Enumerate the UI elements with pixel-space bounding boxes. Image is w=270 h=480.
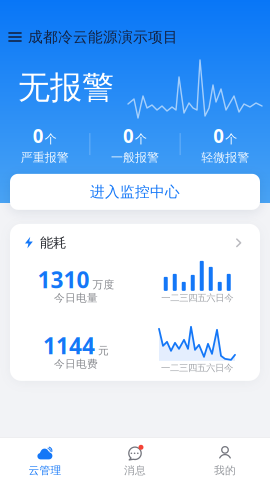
staticText: 轻微报警 <box>201 150 249 165</box>
staticText: 严重报警 <box>21 150 69 165</box>
staticText: 我的 <box>214 464 236 477</box>
staticText: 日 <box>215 292 224 304</box>
button[interactable]: 云管理 <box>0 438 90 480</box>
button[interactable]: 菜单 <box>9 32 21 42</box>
staticText: 今日电量 <box>54 291 98 304</box>
staticText: 1310 <box>37 264 89 294</box>
staticText: 日 <box>215 362 224 374</box>
staticText: 四 <box>188 292 197 304</box>
staticText: 0 <box>33 123 44 148</box>
staticText: 成都冷云能源演示项目 <box>28 28 178 46</box>
staticText: 四 <box>188 362 197 374</box>
staticText: 0 <box>213 123 224 148</box>
staticText: 1144 <box>43 330 95 360</box>
staticText: 0 <box>123 123 134 148</box>
staticText: 元 <box>98 344 109 357</box>
staticText: 五 <box>197 292 206 304</box>
staticText: 万度 <box>92 278 114 291</box>
staticText: 六 <box>206 292 215 304</box>
staticText: 今 <box>224 292 233 304</box>
staticText: 六 <box>206 362 215 374</box>
staticText: 三 <box>179 362 188 374</box>
staticText: 个 <box>45 132 57 146</box>
button[interactable]: 消息 <box>90 438 180 480</box>
staticText: 一般报警 <box>111 150 159 165</box>
staticText: 个 <box>135 132 147 146</box>
staticText: 五 <box>197 362 206 374</box>
button[interactable]: 我的 <box>180 438 270 480</box>
button[interactable]: 进入监控中心 <box>10 174 260 210</box>
staticText: 个 <box>225 132 237 146</box>
staticText: 二 <box>170 292 179 304</box>
staticText: 消息 <box>124 464 146 477</box>
staticText: 云管理 <box>28 464 61 477</box>
button[interactable]: 能耗 <box>10 224 260 381</box>
staticText: 二 <box>170 362 179 374</box>
staticText: 今 <box>224 362 233 374</box>
staticText: 一 <box>161 292 170 304</box>
staticText: 今日电费 <box>54 357 98 370</box>
staticText: 进入监控中心 <box>90 183 180 201</box>
staticText: 能耗 <box>40 235 66 251</box>
staticText: 一 <box>161 362 170 374</box>
staticText: 三 <box>179 292 188 304</box>
staticText: 无报警 <box>18 68 114 107</box>
